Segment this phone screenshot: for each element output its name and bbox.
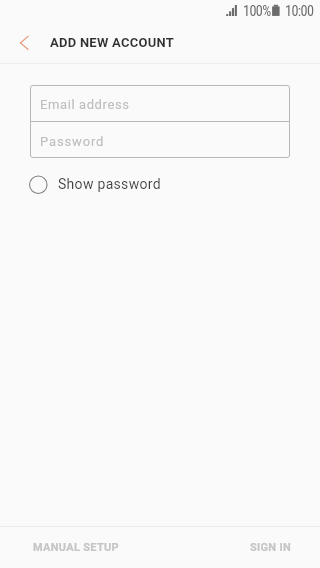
staticText: Show password — [58, 176, 161, 192]
button[interactable]: SIGN IN — [207, 527, 320, 568]
staticText: Password — [40, 134, 105, 149]
button[interactable]: Show password — [29, 167, 161, 201]
staticText: Email address — [40, 97, 130, 112]
staticText: 10:00 — [285, 3, 314, 20]
staticText: MANUAL SETUP — [33, 541, 119, 554]
staticText: SIGN IN — [250, 541, 292, 554]
button[interactable]: MANUAL SETUP — [12, 527, 139, 568]
staticText: ADD NEW ACCOUNT — [50, 35, 174, 50]
button[interactable]: Navigate up — [0, 24, 48, 63]
staticText: 100% — [243, 3, 271, 20]
